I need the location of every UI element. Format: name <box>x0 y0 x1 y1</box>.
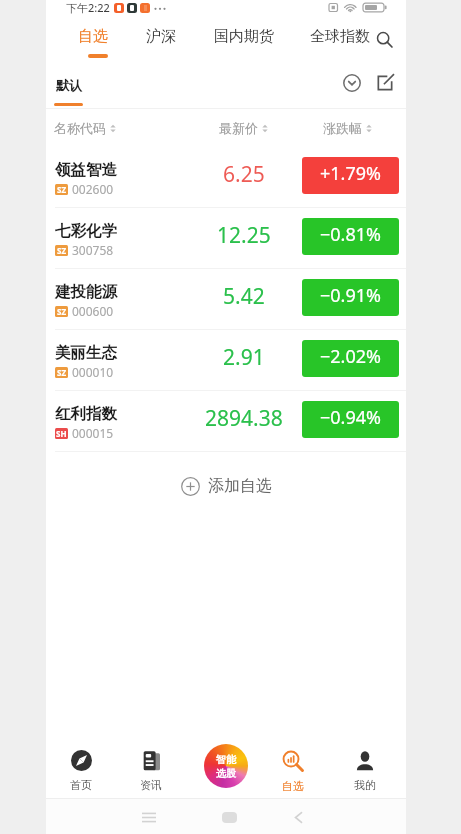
staticText: SZ <box>57 306 67 317</box>
staticText: 300758 <box>72 242 114 258</box>
staticText: 选股 <box>216 767 236 780</box>
staticText: SH <box>56 428 67 439</box>
button[interactable]: 美丽生态 <box>46 330 406 391</box>
button[interactable]: Home <box>214 802 244 832</box>
staticText: 默认 <box>56 77 82 93</box>
button[interactable]: Expand <box>337 68 367 98</box>
staticText: 资讯 <box>140 778 162 792</box>
button[interactable]: 七彩化学 <box>46 208 406 269</box>
staticText: 红利指数 <box>55 404 117 424</box>
button[interactable]: 领益智造 <box>46 147 406 208</box>
button[interactable]: 自选 <box>263 740 323 798</box>
staticText: 国内期货 <box>214 27 274 46</box>
button[interactable]: 涨跌幅 <box>323 120 372 136</box>
button[interactable]: 我的 <box>335 740 395 798</box>
staticText: −2.02% <box>320 344 381 369</box>
button[interactable]: 全球指数 <box>304 22 376 54</box>
staticText: 002600 <box>72 181 114 197</box>
button[interactable]: 沪深 <box>125 22 197 54</box>
button[interactable]: Back <box>283 802 313 832</box>
staticText: 000600 <box>72 303 114 319</box>
staticText: 6.25 <box>223 160 265 189</box>
button[interactable]: 国内期货 <box>208 22 280 54</box>
button[interactable]: Search <box>371 26 397 52</box>
button[interactable]: 名称代码 <box>54 120 116 136</box>
staticText: −0.94% <box>320 405 381 430</box>
staticText: 七彩化学 <box>55 221 117 241</box>
staticText: 自选 <box>282 779 304 793</box>
button[interactable]: Recents <box>134 802 164 832</box>
button[interactable]: 智能选股 <box>204 744 248 788</box>
button[interactable]: 建投能源 <box>46 269 406 330</box>
staticText: +1.79% <box>320 161 381 186</box>
staticText: 涨跌幅 <box>323 120 362 136</box>
button[interactable]: 默认 <box>54 59 83 106</box>
button[interactable]: 首页 <box>51 740 111 798</box>
button[interactable]: Edit <box>370 68 400 98</box>
staticText: 首页 <box>70 778 92 792</box>
staticText: 12.25 <box>217 221 271 250</box>
staticText: 建投能源 <box>55 282 117 302</box>
staticText: 添加自选 <box>208 476 272 496</box>
staticText: 我的 <box>354 778 376 792</box>
staticText: 2.91 <box>223 343 265 372</box>
button[interactable]: 添加自选 <box>171 466 282 506</box>
staticText: SZ <box>57 245 67 256</box>
button[interactable]: 红利指数 <box>46 391 406 452</box>
staticText: SZ <box>57 184 67 195</box>
staticText: 智能 <box>216 753 236 766</box>
staticText: 美丽生态 <box>55 343 117 363</box>
staticText: 最新价 <box>219 120 258 136</box>
staticText: −0.81% <box>320 222 381 247</box>
button[interactable]: 自选 <box>57 22 129 58</box>
staticText: 下午2:22 <box>66 0 110 15</box>
staticText: 自选 <box>78 27 108 46</box>
staticText: 5.42 <box>223 282 265 311</box>
staticText: 领益智造 <box>55 160 117 180</box>
button[interactable]: 资讯 <box>121 740 181 798</box>
staticText: 名称代码 <box>54 120 106 136</box>
staticText: 沪深 <box>146 27 176 46</box>
staticText: 全球指数 <box>310 27 370 46</box>
staticText: −0.91% <box>320 283 381 308</box>
staticText: SZ <box>57 367 67 378</box>
button[interactable]: 最新价 <box>219 120 268 136</box>
staticText: 000010 <box>72 364 114 380</box>
staticText: 2894.38 <box>205 404 283 433</box>
staticText: 000015 <box>72 425 114 441</box>
